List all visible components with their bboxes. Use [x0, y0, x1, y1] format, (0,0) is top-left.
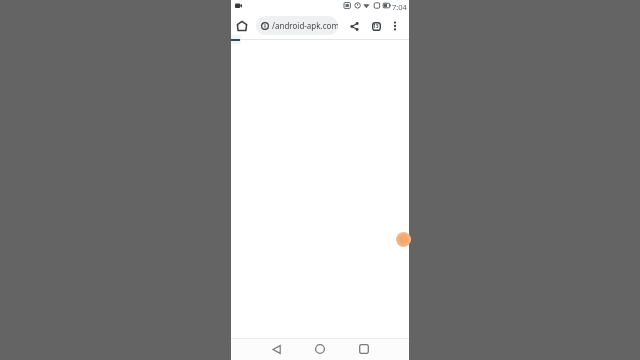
- button[interactable]: [396, 232, 411, 247]
- button[interactable]: [234, 18, 250, 34]
- button[interactable]: [311, 340, 329, 358]
- button[interactable]: [267, 340, 285, 358]
- staticText: 13: [373, 23, 379, 30]
- button[interactable]: [355, 340, 373, 358]
- button[interactable]: [346, 18, 362, 34]
- button[interactable]: 13: [368, 18, 384, 34]
- staticText: /android-apk.com: [272, 20, 338, 31]
- button[interactable]: [387, 18, 403, 34]
- button[interactable]: /android-apk.com: [256, 16, 338, 35]
- staticText: 7:04: [392, 2, 407, 12]
